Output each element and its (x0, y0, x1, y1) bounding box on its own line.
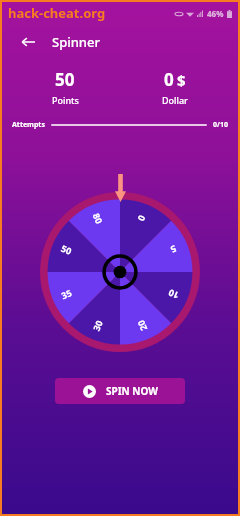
button[interactable]: Spin wheel (40, 192, 200, 352)
staticText: SPIN NOW (106, 384, 158, 398)
staticText: 35 (59, 286, 74, 301)
staticText: 20 (134, 318, 149, 333)
button[interactable]: 50 (10, 68, 120, 106)
staticText: 50 (59, 242, 74, 257)
staticText: Dollar (162, 94, 188, 106)
staticText: 5 (168, 243, 179, 256)
staticText: 0 (135, 213, 149, 223)
staticText: hack-cheat.org (8, 4, 106, 22)
button[interactable]: SPIN NOW (55, 378, 185, 404)
staticText: 0/10 (213, 120, 228, 130)
staticText: $ (177, 70, 186, 90)
staticText: 50 (55, 68, 75, 91)
staticText: Spinner (52, 33, 100, 51)
staticText: Points (52, 94, 79, 106)
staticText: 80 (91, 211, 106, 226)
staticText: Attempts (12, 120, 45, 130)
button[interactable]: 0 (120, 68, 230, 106)
button[interactable]: Back (16, 30, 40, 54)
staticText: 30 (90, 318, 105, 333)
staticText: 10 (166, 287, 181, 302)
staticText: 46% (207, 8, 224, 19)
staticText: 0 (164, 68, 174, 91)
